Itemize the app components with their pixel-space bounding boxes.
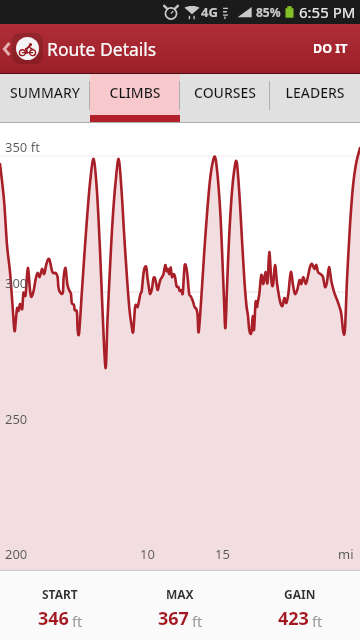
staticText: ft: [312, 611, 323, 631]
staticText: ft: [72, 611, 83, 631]
button[interactable]: LEADERS: [270, 74, 360, 122]
staticText: mi: [338, 545, 354, 563]
staticText: 346: [38, 606, 69, 631]
staticText: SUMMARY: [10, 83, 80, 102]
button[interactable]: MAX: [120, 571, 240, 640]
staticText: 4G: [201, 3, 218, 21]
button[interactable]: START: [0, 571, 120, 640]
staticText: 200: [5, 545, 28, 563]
staticText: 6:55 PM: [299, 2, 356, 22]
staticText: 300: [5, 274, 28, 292]
button[interactable]: Back: [0, 33, 43, 64]
staticText: COURSES: [194, 83, 256, 102]
button[interactable]: COURSES: [180, 74, 270, 122]
staticText: 85%: [256, 4, 281, 20]
staticText: START: [42, 586, 78, 602]
staticText: LEADERS: [285, 83, 345, 102]
staticText: 10: [140, 545, 155, 563]
button[interactable]: GAIN: [240, 571, 360, 640]
staticText: ft: [192, 611, 203, 631]
staticText: GAIN: [284, 586, 316, 602]
button[interactable]: CLIMBS: [90, 74, 180, 122]
staticText: 15: [215, 545, 230, 563]
staticText: Route Details: [47, 37, 157, 61]
staticText: 250: [5, 410, 28, 428]
button[interactable]: SUMMARY: [0, 74, 90, 122]
staticText: CLIMBS: [109, 83, 161, 102]
staticText: 350 ft: [5, 138, 40, 156]
button[interactable]: DO IT: [297, 25, 360, 72]
staticText: 367: [158, 606, 189, 631]
staticText: MAX: [166, 586, 194, 602]
staticText: 423: [278, 606, 309, 631]
staticText: DO IT: [313, 40, 348, 57]
